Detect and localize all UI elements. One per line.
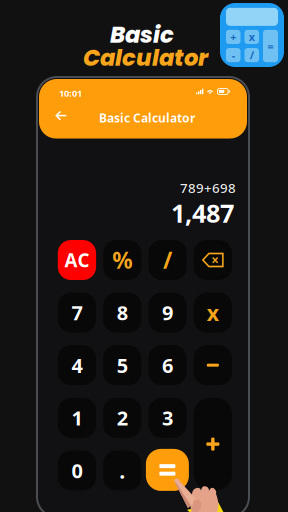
staticText: 1 <box>71 404 82 431</box>
button[interactable]: 3 <box>148 398 187 438</box>
staticText: . <box>119 456 125 484</box>
staticText: Calculator <box>83 42 208 74</box>
staticText: 8 <box>117 299 128 326</box>
button[interactable]: 7 <box>58 293 96 333</box>
staticText: / <box>250 48 254 62</box>
staticText: 4 <box>71 352 82 378</box>
button[interactable]: 0 <box>58 450 96 490</box>
button[interactable]: AC <box>58 240 96 280</box>
staticText: Basic <box>110 19 174 51</box>
button[interactable]: Plus <box>194 398 232 490</box>
button[interactable]: Backspace <box>194 240 232 280</box>
button[interactable]: 6 <box>148 345 187 385</box>
staticText: 0 <box>71 457 82 484</box>
staticText: 10:01 <box>59 87 82 99</box>
button[interactable]: 2 <box>103 398 141 438</box>
button[interactable]: x <box>194 293 232 333</box>
staticText: + <box>230 30 236 44</box>
button[interactable]: 8 <box>103 293 141 333</box>
button[interactable]: . <box>103 450 141 490</box>
staticText: = <box>267 39 273 53</box>
staticText: / <box>163 245 172 275</box>
staticText: 2 <box>117 404 128 431</box>
staticText: 3 <box>162 404 173 431</box>
staticText: % <box>112 245 132 275</box>
button[interactable]: 9 <box>148 293 187 333</box>
staticText: 6 <box>162 352 173 378</box>
staticText: x <box>249 30 255 44</box>
staticText: Basic Calculator <box>99 110 195 126</box>
staticText: × <box>211 251 219 269</box>
button[interactable]: Back <box>51 106 71 125</box>
button[interactable]: Minus <box>194 345 232 385</box>
staticText: 5 <box>117 352 128 378</box>
button[interactable]: / <box>148 240 187 280</box>
button[interactable]: 4 <box>58 345 96 385</box>
staticText: - <box>232 48 235 62</box>
staticText: 7 <box>71 299 82 326</box>
button[interactable]: 5 <box>103 345 141 385</box>
staticText: x <box>207 298 219 327</box>
button[interactable]: % <box>103 240 141 280</box>
button[interactable]: Equals <box>146 449 189 491</box>
staticText: 789+698 <box>180 179 236 197</box>
staticText: AC <box>64 248 89 272</box>
staticText: 9 <box>162 299 173 326</box>
staticText: 1,487 <box>171 196 234 230</box>
button[interactable]: 1 <box>58 398 96 438</box>
